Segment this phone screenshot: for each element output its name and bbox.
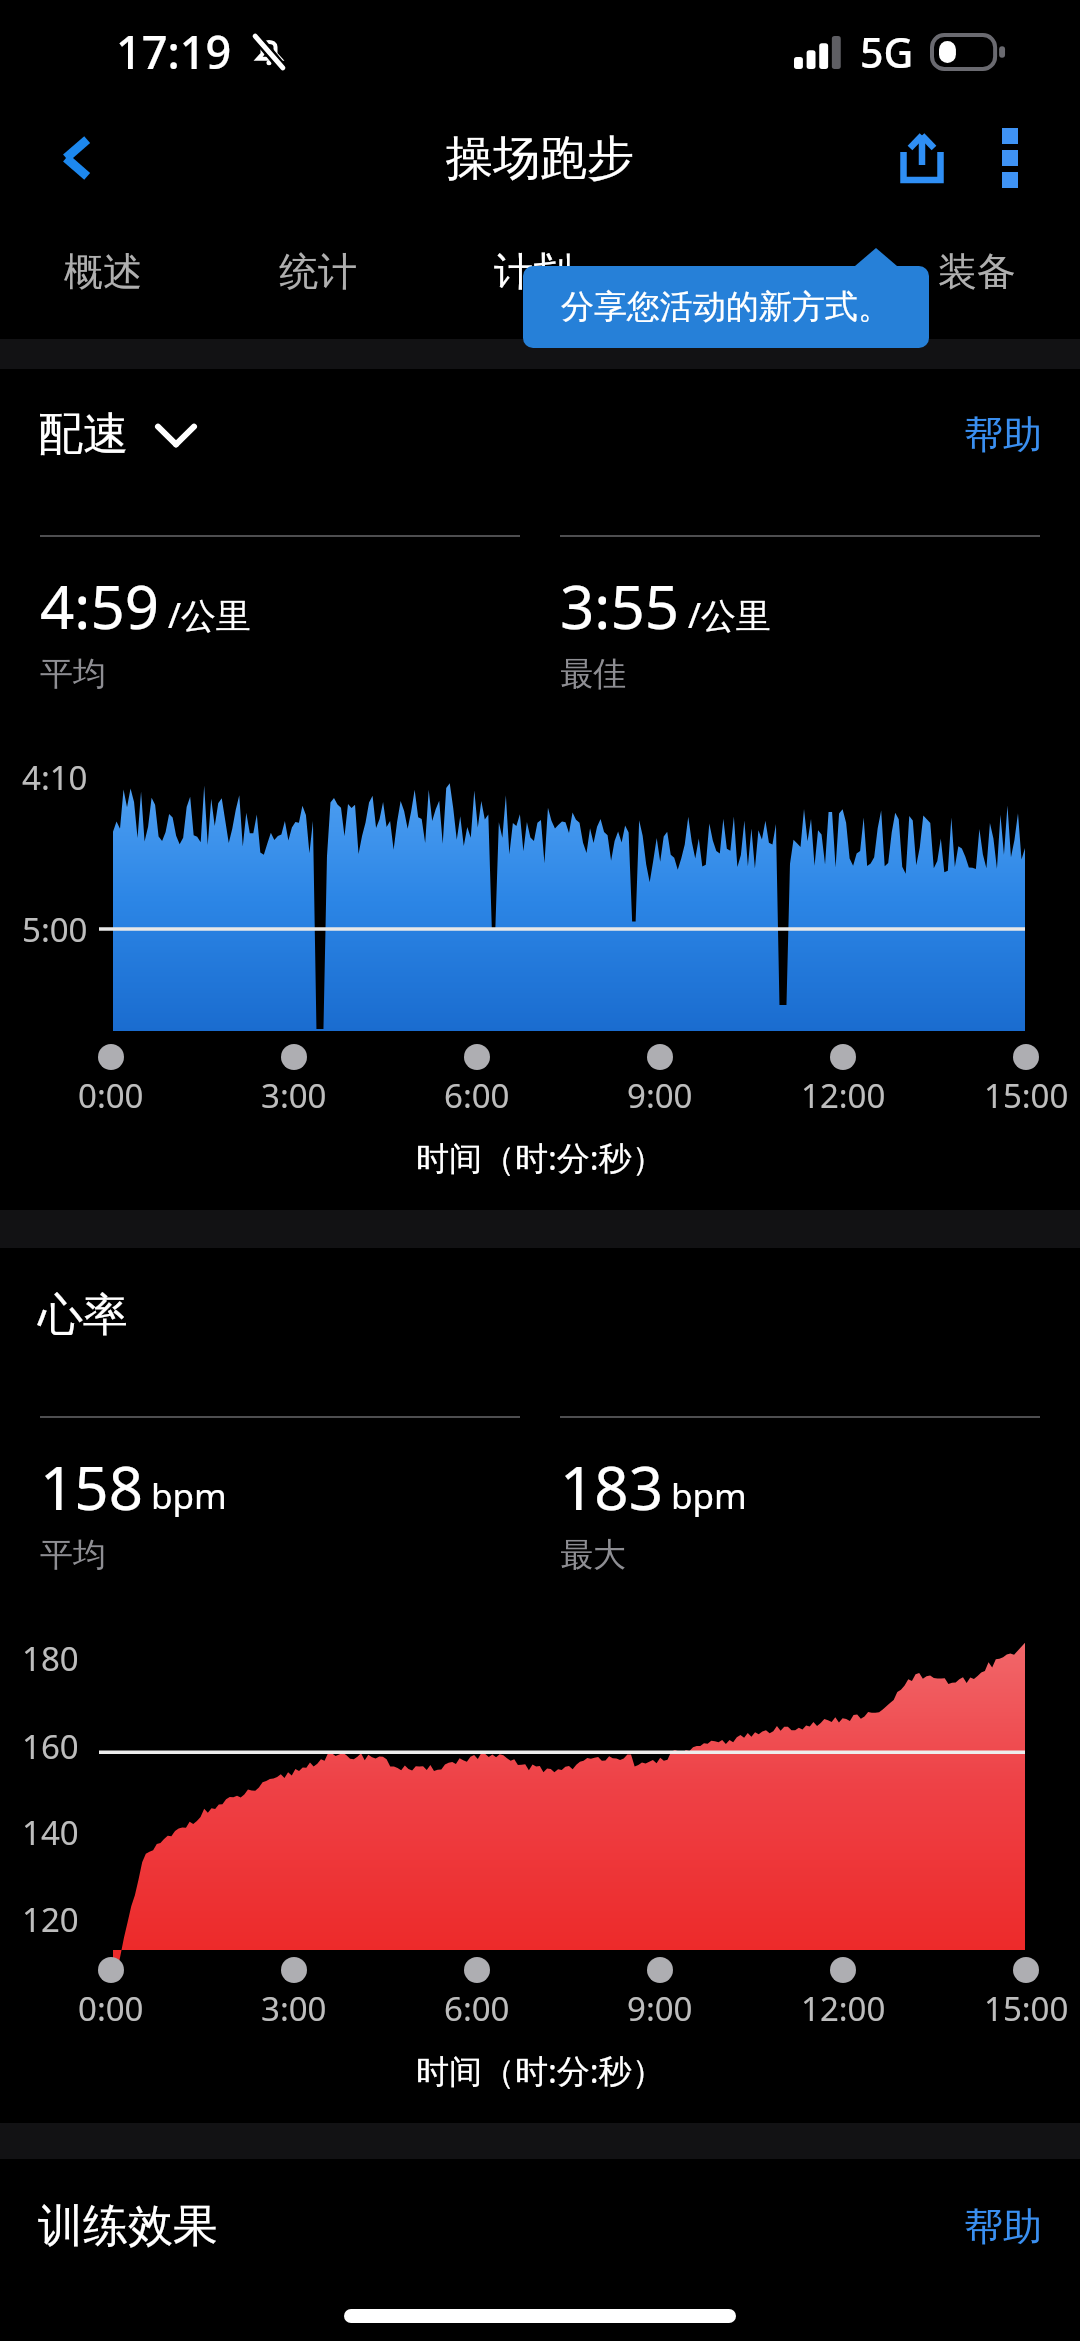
- staticText: bpm: [671, 1472, 747, 1520]
- staticText: 训练效果: [38, 2198, 218, 2255]
- button[interactable]: 分享您活动的新方式。: [523, 266, 929, 348]
- button[interactable]: Back: [36, 116, 120, 200]
- staticText: 160: [22, 1724, 79, 1769]
- staticText: 装备: [938, 247, 1016, 296]
- button[interactable]: 帮助: [964, 410, 1042, 459]
- staticText: 配速: [38, 406, 128, 463]
- button[interactable]: 训练效果: [38, 2198, 218, 2255]
- staticText: 3:00: [261, 1073, 327, 1118]
- staticText: 分享您活动的新方式。: [561, 286, 891, 328]
- staticText: 180: [22, 1636, 79, 1681]
- staticText: 平均: [40, 1534, 106, 1576]
- staticText: 3:55: [560, 565, 680, 647]
- staticText: 6:00: [444, 1073, 510, 1118]
- staticText: 操场跑步: [446, 129, 634, 188]
- staticText: 17:19: [116, 21, 232, 82]
- button[interactable]: More options: [966, 114, 1054, 202]
- button[interactable]: 配速: [38, 406, 196, 463]
- staticText: 时间（时:分:秒）: [416, 2048, 665, 2093]
- staticText: 4:59: [40, 565, 160, 647]
- staticText: 4:10: [22, 755, 88, 800]
- button[interactable]: 装备: [887, 213, 1067, 329]
- staticText: 帮助: [964, 2202, 1042, 2251]
- staticText: 5G: [860, 24, 914, 80]
- staticText: 帮助: [964, 410, 1042, 459]
- staticText: 15:00: [984, 1986, 1069, 2031]
- button[interactable]: 概述: [13, 213, 193, 329]
- button[interactable]: 帮助: [964, 2202, 1042, 2251]
- staticText: 平均: [40, 653, 106, 695]
- staticText: 9:00: [627, 1986, 693, 2031]
- button[interactable]: 心率: [38, 1287, 128, 1344]
- button[interactable]: 计划: [443, 213, 623, 329]
- staticText: 时间（时:分:秒）: [416, 1135, 665, 1180]
- staticText: 6:00: [444, 1986, 510, 2031]
- staticText: 0:00: [78, 1986, 144, 2031]
- staticText: 15:00: [984, 1073, 1069, 1118]
- staticText: 3:00: [261, 1986, 327, 2031]
- staticText: /公里: [688, 591, 772, 639]
- staticText: bpm: [151, 1472, 227, 1520]
- staticText: 计划: [494, 247, 572, 296]
- staticText: 183: [560, 1446, 663, 1528]
- button[interactable]: 统计: [228, 213, 408, 329]
- staticText: 5:00: [22, 907, 88, 952]
- staticText: 9:00: [627, 1073, 693, 1118]
- staticText: 心率: [38, 1287, 128, 1344]
- staticText: 140: [22, 1810, 79, 1855]
- staticText: 最大: [560, 1534, 626, 1576]
- staticText: 0:00: [78, 1073, 144, 1118]
- staticText: 12:00: [801, 1073, 886, 1118]
- staticText: 158: [40, 1446, 143, 1528]
- staticText: /公里: [168, 591, 252, 639]
- staticText: 最佳: [560, 653, 626, 695]
- staticText: 120: [22, 1897, 79, 1942]
- staticText: 12:00: [801, 1986, 886, 2031]
- staticText: 概述: [64, 247, 142, 296]
- staticText: 统计: [279, 247, 357, 296]
- button[interactable]: Share: [878, 114, 966, 202]
